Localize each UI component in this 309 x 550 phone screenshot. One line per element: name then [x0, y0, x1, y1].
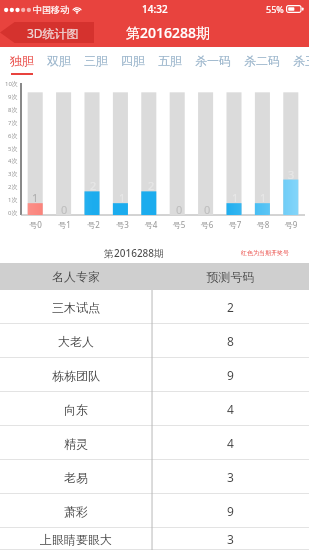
- button[interactable]: 栋栋团队: [0, 358, 309, 392]
- staticText: 1: [260, 190, 267, 205]
- button[interactable]: Back, 3D统计图: [0, 22, 94, 43]
- staticText: 3: [152, 469, 309, 485]
- button[interactable]: 大老人: [0, 324, 309, 358]
- staticText: 栋栋团队: [0, 368, 152, 383]
- button[interactable]: 萧彩: [0, 494, 309, 528]
- button[interactable]: 三胆: [84, 47, 108, 79]
- staticText: 4次: [8, 157, 18, 165]
- staticText: 五胆: [158, 53, 182, 68]
- button[interactable]: 四胆: [121, 47, 145, 79]
- staticText: 名人专家: [0, 269, 152, 284]
- staticText: 2: [152, 299, 309, 315]
- staticText: 1: [32, 190, 39, 205]
- staticText: 6次: [8, 132, 18, 140]
- staticText: 中国移动: [33, 4, 69, 15]
- staticText: 9: [152, 503, 309, 519]
- staticText: 杀三码: [293, 53, 309, 68]
- staticText: 4: [152, 435, 309, 451]
- button[interactable]: 三木试点: [0, 290, 309, 324]
- staticText: 预测号码: [152, 269, 309, 284]
- button[interactable]: 独胆: [10, 47, 34, 79]
- staticText: 向东: [0, 402, 152, 417]
- staticText: 10次: [5, 80, 18, 88]
- staticText: 5次: [8, 145, 18, 153]
- button[interactable]: 杀一码: [195, 47, 231, 79]
- button[interactable]: 上眼睛要眼大: [0, 528, 309, 550]
- staticText: 号6: [193, 219, 221, 230]
- staticText: 号9: [277, 219, 305, 230]
- staticText: 3: [152, 531, 309, 547]
- staticText: 号0: [21, 219, 50, 230]
- button[interactable]: 杀三码: [293, 47, 309, 79]
- button[interactable]: 精灵: [0, 426, 309, 460]
- staticText: 独胆: [10, 53, 34, 68]
- staticText: 0次: [8, 209, 18, 217]
- staticText: 9次: [8, 93, 18, 101]
- staticText: 0: [176, 202, 183, 217]
- staticText: 2: [90, 178, 97, 193]
- staticText: 1: [232, 190, 239, 205]
- staticText: 号4: [137, 219, 165, 230]
- button[interactable]: 老易: [0, 460, 309, 494]
- staticText: 号3: [108, 219, 137, 230]
- staticText: 大老人: [0, 334, 152, 349]
- staticText: 老易: [0, 470, 152, 485]
- staticText: 号1: [50, 219, 79, 230]
- staticText: 杀二码: [244, 53, 280, 68]
- staticText: 上眼睛要眼大: [0, 532, 152, 547]
- staticText: 8次: [8, 106, 18, 114]
- button[interactable]: 杀二码: [244, 47, 280, 79]
- staticText: 3次: [8, 170, 18, 178]
- staticText: 双胆: [47, 53, 71, 68]
- staticText: 1次: [8, 196, 18, 204]
- staticText: 3: [288, 167, 295, 182]
- staticText: 14:32: [142, 2, 168, 16]
- staticText: 0: [61, 202, 68, 217]
- staticText: 号7: [221, 219, 249, 230]
- staticText: 号5: [165, 219, 193, 230]
- staticText: 7次: [8, 119, 18, 127]
- staticText: 55%: [266, 3, 284, 15]
- staticText: 2次: [8, 183, 18, 191]
- staticText: 2: [148, 178, 155, 193]
- staticText: 4: [152, 401, 309, 417]
- staticText: 3D统计图: [27, 25, 79, 41]
- staticText: 萧彩: [0, 504, 152, 519]
- staticText: 号8: [249, 219, 277, 230]
- staticText: 8: [152, 333, 309, 349]
- staticText: 精灵: [0, 436, 152, 451]
- staticText: 第2016288期: [104, 246, 165, 260]
- button[interactable]: 双胆: [47, 47, 71, 79]
- staticText: 1: [119, 190, 126, 205]
- staticText: 0: [204, 202, 211, 217]
- staticText: 杀一码: [195, 53, 231, 68]
- staticText: 第2016288期: [126, 23, 211, 42]
- staticText: 四胆: [121, 53, 145, 68]
- staticText: 号2: [79, 219, 108, 230]
- staticText: 9: [152, 367, 309, 383]
- staticText: 三胆: [84, 53, 108, 68]
- staticText: 红色为当期开奖号: [241, 249, 289, 257]
- button[interactable]: 向东: [0, 392, 309, 426]
- button[interactable]: 五胆: [158, 47, 182, 79]
- staticText: 三木试点: [0, 300, 152, 315]
